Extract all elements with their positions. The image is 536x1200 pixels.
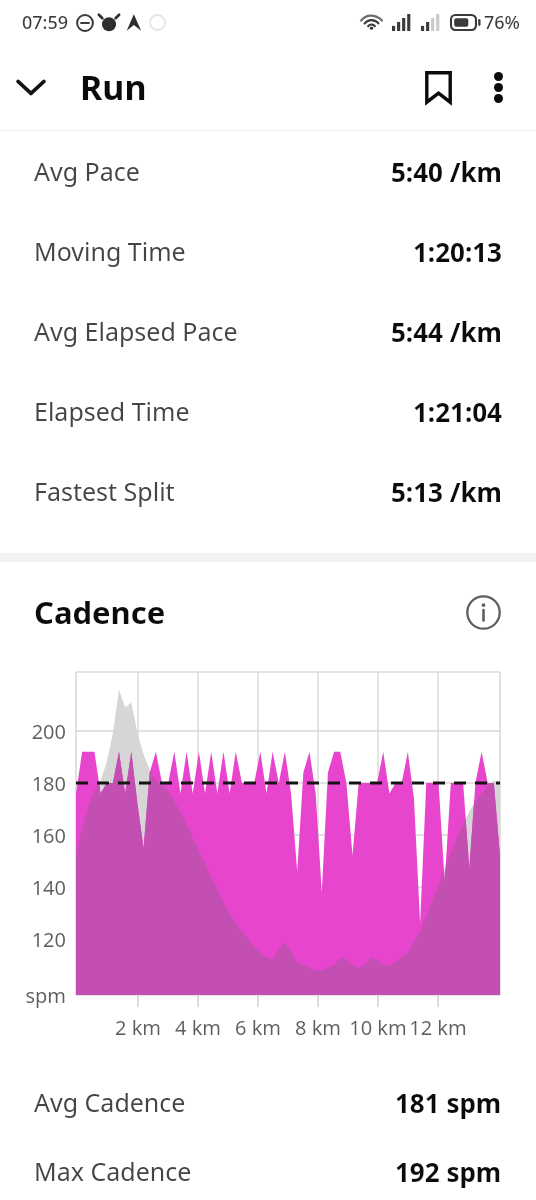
staticText: 2 km xyxy=(104,1014,172,1041)
staticText: Run xyxy=(80,64,147,110)
button[interactable]: Info about cadence xyxy=(460,589,506,635)
staticText: 5:44 /km xyxy=(391,314,502,349)
button[interactable]: Fastest Split xyxy=(0,451,536,531)
staticText: 140 xyxy=(14,874,66,901)
staticText: Max Cadence xyxy=(34,1154,192,1188)
staticText: 12 km xyxy=(404,1014,472,1041)
staticText: 180 xyxy=(14,770,66,797)
button[interactable]: Max Cadence xyxy=(0,1142,536,1200)
staticText: 5:13 /km xyxy=(391,474,502,509)
staticText: 160 xyxy=(14,822,66,849)
staticText: Fastest Split xyxy=(34,474,175,508)
button[interactable]: More options xyxy=(468,57,528,117)
staticText: Avg Pace xyxy=(34,154,140,188)
staticText: 120 xyxy=(14,926,66,953)
staticText: 5:40 /km xyxy=(391,154,502,189)
staticText: 10 km xyxy=(344,1014,412,1041)
staticText: 192 spm xyxy=(395,1154,502,1189)
staticText: Moving Time xyxy=(34,234,186,268)
staticText: 07:59 xyxy=(22,10,69,35)
staticText: 200 xyxy=(14,718,66,745)
button[interactable]: Collapse xyxy=(0,56,62,118)
staticText: 181 spm xyxy=(395,1085,502,1120)
staticText: 1:20:13 xyxy=(413,234,502,269)
button[interactable]: Bookmark xyxy=(408,57,468,117)
staticText: Avg Cadence xyxy=(34,1085,186,1119)
staticText: 4 km xyxy=(164,1014,232,1041)
staticText: spm xyxy=(14,982,66,1009)
staticText: 1:21:04 xyxy=(413,394,502,429)
staticText: Cadence xyxy=(34,591,166,633)
staticText: Elapsed Time xyxy=(34,394,190,428)
button[interactable]: Avg Cadence xyxy=(0,1062,536,1142)
staticText: 6 km xyxy=(224,1014,292,1041)
staticText: Avg Elapsed Pace xyxy=(34,314,238,348)
button[interactable]: Avg Pace xyxy=(0,131,536,211)
button[interactable]: Moving Time xyxy=(0,211,536,291)
button[interactable]: Avg Elapsed Pace xyxy=(0,291,536,371)
staticText: 76% xyxy=(484,10,520,35)
staticText: 8 km xyxy=(284,1014,352,1041)
button[interactable]: Elapsed Time xyxy=(0,371,536,451)
